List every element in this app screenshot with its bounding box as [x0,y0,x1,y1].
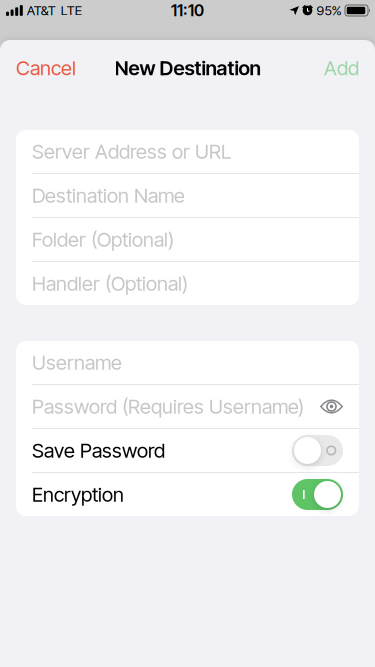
staticText: Handler (Optional) [32,271,188,296]
button[interactable]: Destination Name [16,174,359,217]
button[interactable]: Folder (Optional) [16,218,359,261]
staticText: Password (Requires Username) [32,394,304,419]
button[interactable]: Add [324,56,359,80]
staticText: AT&T [27,2,56,18]
staticText: Save Password [32,438,165,463]
button[interactable]: Server Address or URL [16,130,359,173]
button[interactable]: Save Password [292,435,343,466]
button[interactable]: Password (Requires Username) [16,385,359,428]
staticText: Add [324,56,359,80]
button[interactable]: Encryption [292,479,343,510]
staticText: Cancel [16,56,76,80]
staticText: 95% [316,2,341,18]
staticText: LTE [61,2,82,18]
staticText: 11:10 [171,1,204,20]
button[interactable]: Cancel [16,56,76,80]
button[interactable]: Handler (Optional) [16,262,359,305]
button[interactable]: Show Password [320,399,343,413]
staticText: Encryption [32,482,124,507]
staticText: New Destination [114,56,260,80]
button[interactable]: Username [16,341,359,384]
staticText: Folder (Optional) [32,227,174,252]
staticText: Server Address or URL [32,139,231,164]
staticText: Username [32,350,122,375]
staticText: Destination Name [32,183,185,208]
